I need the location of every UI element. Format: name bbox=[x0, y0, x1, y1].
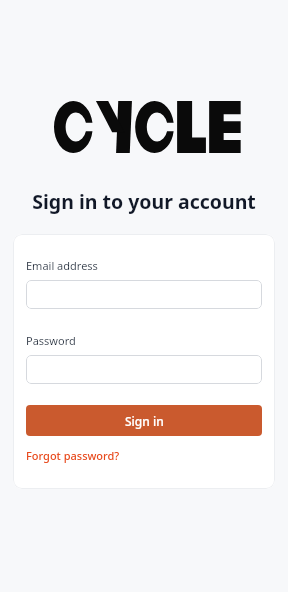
staticText: Forgot password? bbox=[26, 448, 120, 463]
staticText: Sign in bbox=[125, 413, 164, 429]
button[interactable]: Password bbox=[26, 355, 262, 384]
staticText: Password bbox=[26, 333, 76, 348]
button[interactable]: Email address bbox=[26, 280, 262, 309]
staticText: Sign in to your account bbox=[8, 188, 280, 215]
staticText: Email address bbox=[26, 258, 98, 273]
button[interactable]: Sign in bbox=[26, 405, 262, 436]
button[interactable]: Forgot password? bbox=[26, 448, 120, 463]
